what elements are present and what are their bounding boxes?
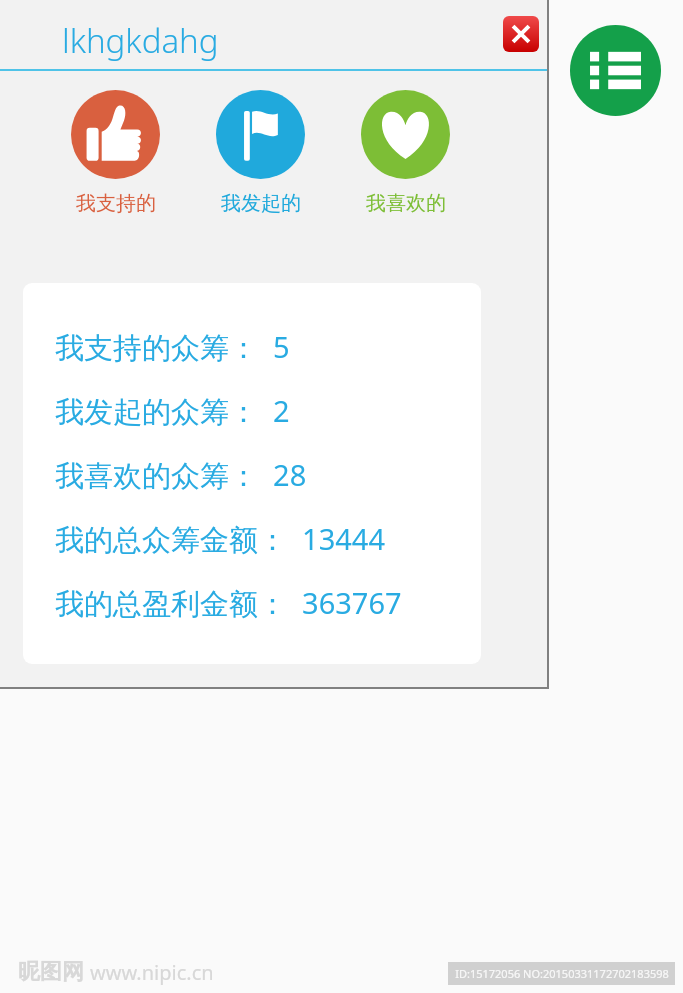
staticText: 昵图网: [18, 958, 84, 986]
staticText: ID:15172056 NO:20150331172702183598: [455, 966, 669, 981]
staticText: 我支持的: [76, 191, 156, 216]
button[interactable]: List: [570, 25, 661, 116]
button[interactable]: 我支持的: [71, 90, 160, 220]
staticText: 我的总盈利金额： 363767: [55, 583, 402, 623]
staticText: www.nipic.cn: [90, 959, 214, 986]
staticText: 我的总众筹金额： 13444: [55, 519, 386, 559]
staticText: 我发起的众筹： 2: [55, 391, 290, 431]
staticText: 我喜欢的: [366, 191, 446, 216]
staticText: 我支持的众筹： 5: [55, 327, 290, 367]
staticText: 我发起的: [221, 191, 301, 216]
button[interactable]: 我发起的: [216, 90, 305, 220]
staticText: 我喜欢的众筹： 28: [55, 455, 307, 495]
button[interactable]: 我喜欢的: [361, 90, 450, 220]
staticText: lkhgkdahg: [62, 18, 219, 63]
button[interactable]: Close: [503, 16, 539, 52]
button[interactable]: 我支持的众筹： 5: [23, 283, 481, 664]
